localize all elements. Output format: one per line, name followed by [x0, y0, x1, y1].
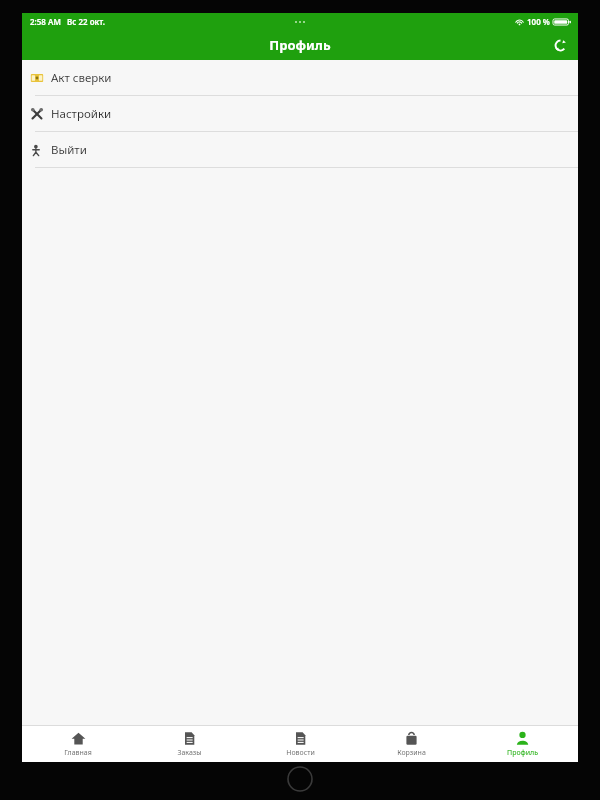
button[interactable]: Обновить	[542, 30, 578, 60]
staticText: Выйти	[51, 142, 87, 158]
button[interactable]: Настройки	[22, 96, 578, 131]
staticText: Настройки	[51, 106, 112, 122]
button[interactable]: Главная	[22, 726, 134, 762]
other: Home	[287, 766, 313, 792]
button[interactable]: Корзина	[356, 726, 467, 762]
staticText: Корзина	[397, 748, 426, 758]
staticText: 2:58 AM	[30, 16, 61, 27]
staticText: Профиль	[507, 748, 538, 758]
staticText: Новости	[286, 748, 315, 758]
staticText: Акт сверки	[51, 70, 112, 86]
button[interactable]: Профиль	[467, 726, 578, 762]
button[interactable]: Новости	[245, 726, 356, 762]
staticText: Вс 22 окт.	[67, 16, 106, 27]
staticText: Главная	[64, 748, 92, 758]
staticText: Заказы	[177, 748, 202, 758]
button[interactable]: Выйти	[22, 132, 578, 167]
staticText: 100 %	[527, 16, 550, 27]
staticText: Профиль	[269, 36, 331, 54]
button[interactable]: Акт сверки	[22, 60, 578, 95]
button[interactable]: Заказы	[134, 726, 245, 762]
